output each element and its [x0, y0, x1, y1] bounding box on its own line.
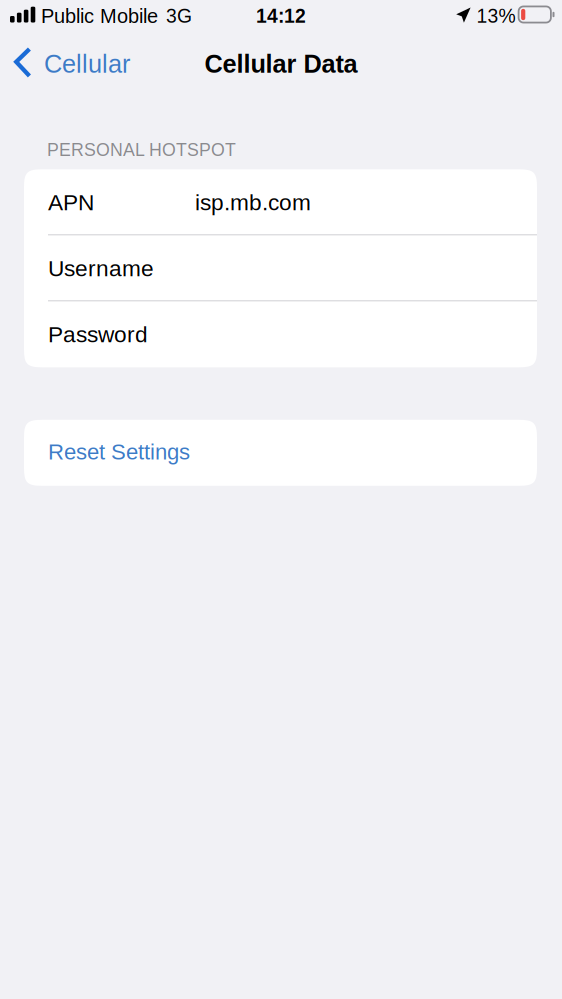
staticText: Public Mobile [41, 5, 158, 27]
staticText: PERSONAL HOTSPOT [47, 140, 236, 160]
staticText: Cellular [44, 50, 130, 78]
button[interactable]: Cellular [0, 29, 150, 96]
staticText: isp.mb.com [195, 190, 311, 215]
staticText: APN [48, 190, 94, 215]
staticText: 13% [477, 5, 516, 27]
staticText: Password [48, 322, 148, 347]
button[interactable]: Reset Settings [24, 420, 537, 486]
button[interactable]: Username [24, 235, 537, 301]
button[interactable]: Password [24, 301, 537, 367]
staticText: Username [48, 256, 154, 281]
staticText: 3G [166, 5, 192, 27]
staticText: Cellular Data [204, 50, 357, 78]
staticText: Reset Settings [48, 439, 190, 464]
staticText: 14:12 [256, 5, 306, 27]
button[interactable]: APN [24, 169, 537, 235]
